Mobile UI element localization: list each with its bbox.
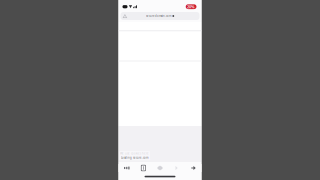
staticText: securedomain.com	[146, 14, 171, 18]
button[interactable]: Text size	[118, 164, 135, 172]
button[interactable]: Share	[152, 164, 168, 172]
button[interactable]: Bookmarks	[135, 164, 152, 172]
staticText: We use cookies here	[120, 152, 149, 155]
button[interactable]: Tabs	[185, 164, 201, 172]
staticText: Loading secure.com	[121, 156, 148, 159]
button[interactable]: securedomain.com	[120, 12, 199, 20]
button[interactable]: Forward	[168, 164, 185, 172]
staticText: 20%	[187, 4, 195, 9]
